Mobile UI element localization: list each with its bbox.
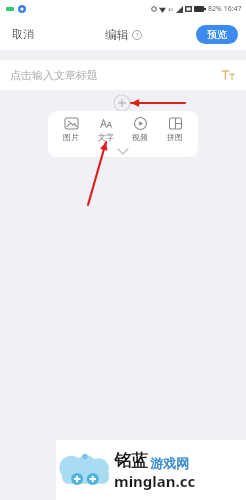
staticText: 编辑 [105,27,129,42]
staticText: 4G [168,7,174,12]
staticText: 图片 [63,132,79,142]
staticText: 预览 [207,28,227,41]
button[interactable]: 点击输入文章标题 [0,60,246,90]
staticText: 拼图 [167,132,183,142]
button[interactable]: 文字 [94,116,118,143]
staticText: 82% 16:47 [208,4,242,14]
button[interactable]: 拼图 [163,116,187,143]
button[interactable]: Text style [220,67,236,83]
button[interactable]: 预览 [196,25,238,44]
button[interactable]: 图片 [59,116,83,143]
staticText: 取消 [12,27,34,41]
staticText: 视频 [132,132,148,142]
button[interactable]: Help [132,30,142,40]
staticText: 铭蓝 [114,450,148,471]
button[interactable]: 取消 [10,23,36,45]
button[interactable]: Add block [113,94,131,112]
staticText: 游戏网 [150,455,189,471]
staticText: ? [136,31,139,39]
button[interactable]: 视频 [128,116,152,143]
staticText: minglan.cc [114,471,196,491]
staticText: 文字 [98,132,114,142]
staticText: 点击输入文章标题 [10,68,220,82]
